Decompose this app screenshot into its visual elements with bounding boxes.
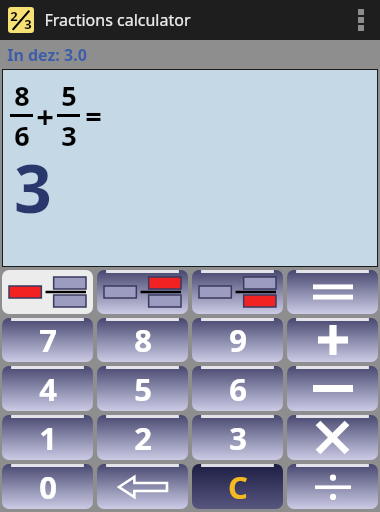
staticText: 3 — [24, 15, 32, 33]
button[interactable]: 3 — [192, 415, 283, 460]
button[interactable]: 0 — [2, 464, 93, 509]
staticText: + — [36, 95, 54, 137]
button[interactable]: Select fraction field 2 — [97, 270, 188, 314]
staticText: 7 — [39, 319, 57, 361]
staticText: 3 — [14, 142, 52, 232]
staticText: C — [228, 466, 248, 508]
button[interactable]: 4 — [2, 366, 93, 411]
staticText: 8 — [134, 319, 152, 361]
staticText: 8 — [14, 77, 30, 114]
staticText: 0 — [39, 466, 57, 508]
staticText: 2 — [10, 7, 18, 25]
button[interactable]: Minus — [287, 366, 378, 411]
button[interactable]: Plus — [287, 318, 378, 362]
button[interactable]: Divide — [287, 464, 378, 509]
staticText: 2 — [134, 417, 152, 459]
staticText: 4 — [39, 368, 57, 410]
staticText: 6 — [229, 368, 247, 410]
button[interactable]: Multiply — [287, 415, 378, 460]
button[interactable]: C — [192, 464, 283, 509]
staticText: = — [85, 96, 102, 135]
staticText: 5 — [61, 77, 77, 114]
staticText: 1 — [39, 417, 57, 459]
button[interactable]: 5 — [97, 366, 188, 411]
staticText: 3 — [229, 417, 247, 459]
staticText: 6 — [14, 117, 30, 154]
button[interactable]: 8 — [97, 318, 188, 362]
button[interactable]: 1 — [2, 415, 93, 460]
button[interactable]: Select fraction field 3 — [192, 270, 283, 314]
staticText: 9 — [229, 319, 247, 361]
button[interactable]: 7 — [2, 318, 93, 362]
staticText: 3 — [61, 117, 77, 154]
button[interactable]: Equals — [287, 270, 378, 314]
button[interactable]: Backspace — [97, 464, 188, 509]
button[interactable]: 2 — [97, 415, 188, 460]
staticText: In dez: 3.0 — [7, 44, 87, 66]
staticText: Fractions calculator — [44, 9, 191, 31]
staticText: 5 — [134, 368, 152, 410]
button[interactable]: More options — [342, 0, 380, 40]
button[interactable]: 9 — [192, 318, 283, 362]
button[interactable]: Select fraction field 1 — [2, 270, 93, 314]
button[interactable]: 6 — [192, 366, 283, 411]
